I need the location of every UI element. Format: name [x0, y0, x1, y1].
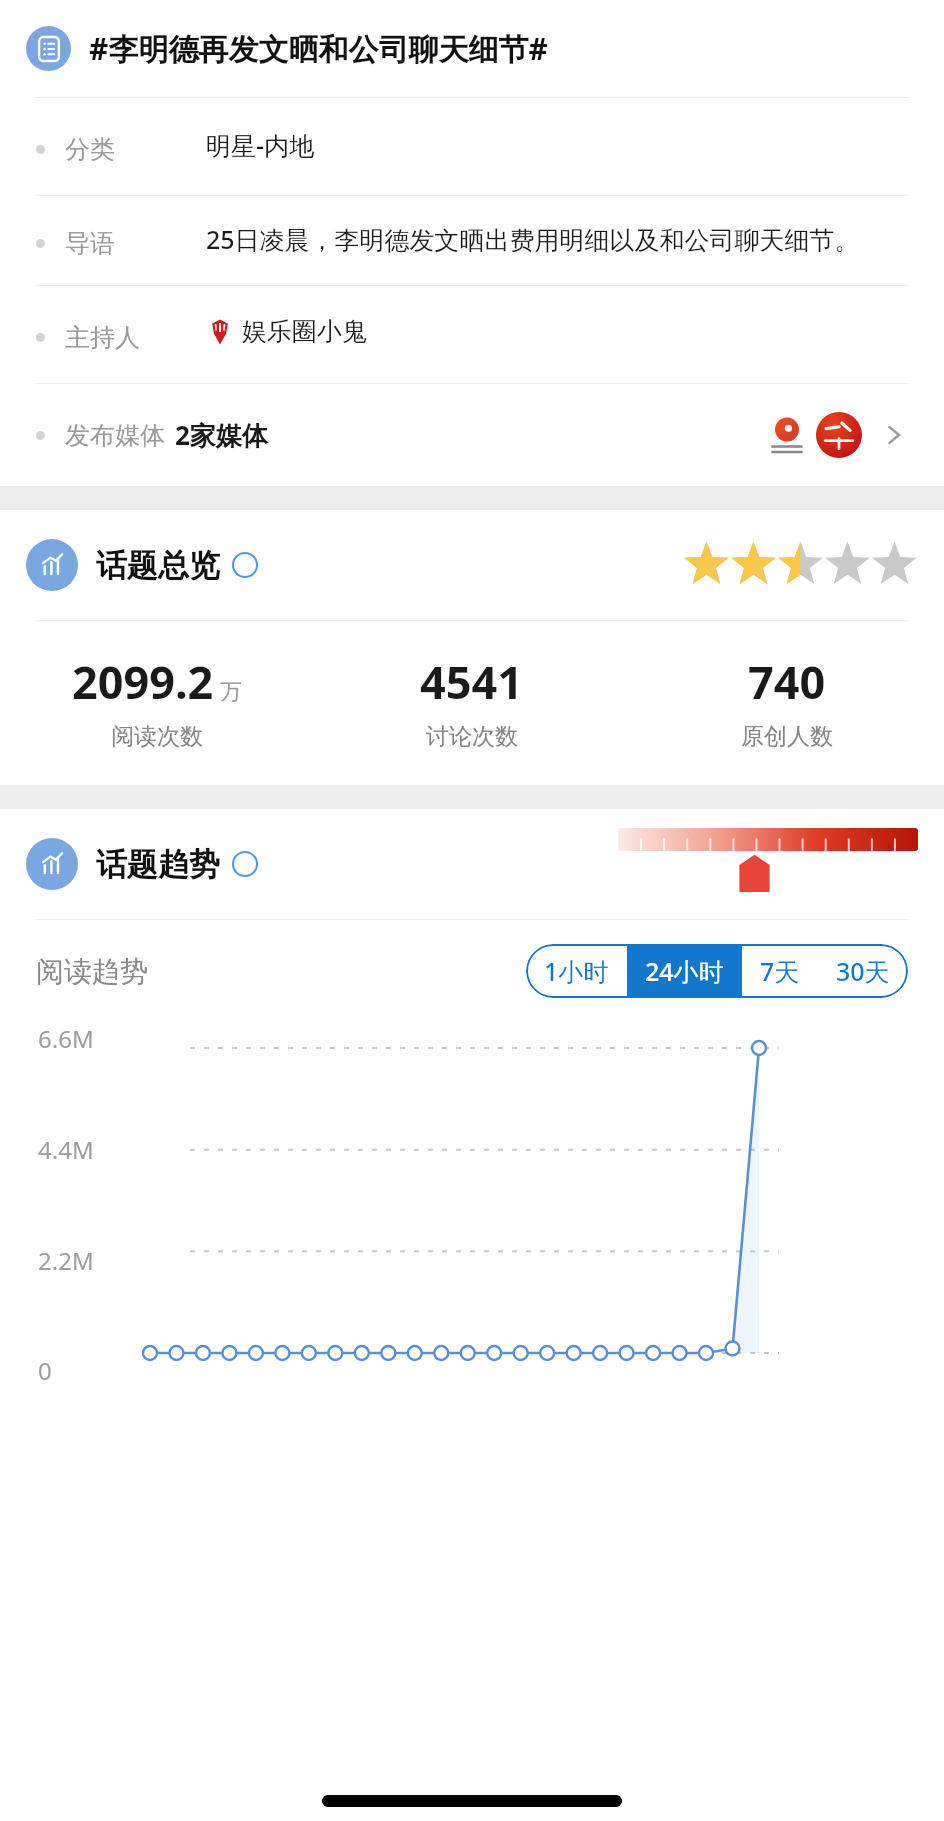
- button[interactable]: 7天: [742, 944, 818, 998]
- staticText: 明星-内地: [206, 128, 315, 162]
- staticText: 30天: [836, 954, 890, 988]
- staticText: 话题总览: [96, 546, 220, 585]
- staticText: 话题趋势: [96, 845, 220, 884]
- button[interactable]: 24小时: [627, 944, 742, 998]
- staticText: 740: [748, 651, 826, 712]
- staticText: 阅读趋势: [36, 954, 148, 989]
- button[interactable]: 分类: [0, 98, 944, 195]
- button[interactable]: 导语: [0, 196, 944, 285]
- staticText: #李明德再发文晒和公司聊天细节#: [89, 28, 548, 69]
- button[interactable]: 1小时: [526, 944, 627, 998]
- staticText: 2.2M: [38, 1244, 94, 1277]
- staticText: 讨论次数: [426, 722, 518, 751]
- staticText: 发布媒体: [65, 420, 165, 451]
- button[interactable]: 4541: [314, 651, 629, 751]
- staticText: 阅读次数: [111, 722, 203, 751]
- staticText: 6.6M: [38, 1022, 94, 1055]
- staticText: 7天: [760, 954, 800, 988]
- button[interactable]: 2099.2: [0, 651, 314, 751]
- staticText: 万: [220, 678, 242, 706]
- staticText: 2099.2: [72, 651, 214, 712]
- staticText: 24小时: [645, 954, 724, 988]
- button[interactable]: 740: [629, 651, 944, 751]
- button[interactable]: #李明德再发文晒和公司聊天细节#: [0, 0, 944, 97]
- staticText: 4541: [420, 651, 523, 712]
- button[interactable]: 话题趋势: [0, 809, 944, 919]
- button[interactable]: 主持人: [0, 286, 944, 383]
- other: Help: [232, 552, 258, 578]
- staticText: 25日凌晨，李明德发文晒出费用明细以及和公司聊天细节。: [206, 222, 860, 256]
- staticText: 2家媒体: [175, 417, 268, 453]
- staticText: 娱乐圈小鬼: [242, 316, 367, 347]
- staticText: 原创人数: [741, 722, 833, 751]
- staticText: 0: [38, 1354, 52, 1387]
- button[interactable]: 话题总览: [0, 510, 944, 620]
- staticText: 4.4M: [38, 1133, 94, 1166]
- button[interactable]: 30天: [818, 944, 908, 998]
- other: Help: [232, 851, 258, 877]
- staticText: 导语: [65, 228, 115, 259]
- staticText: 分类: [65, 134, 115, 165]
- other: More media: [880, 421, 908, 449]
- staticText: 1小时: [544, 954, 609, 988]
- button[interactable]: 发布媒体: [0, 384, 944, 486]
- staticText: 主持人: [65, 322, 140, 353]
